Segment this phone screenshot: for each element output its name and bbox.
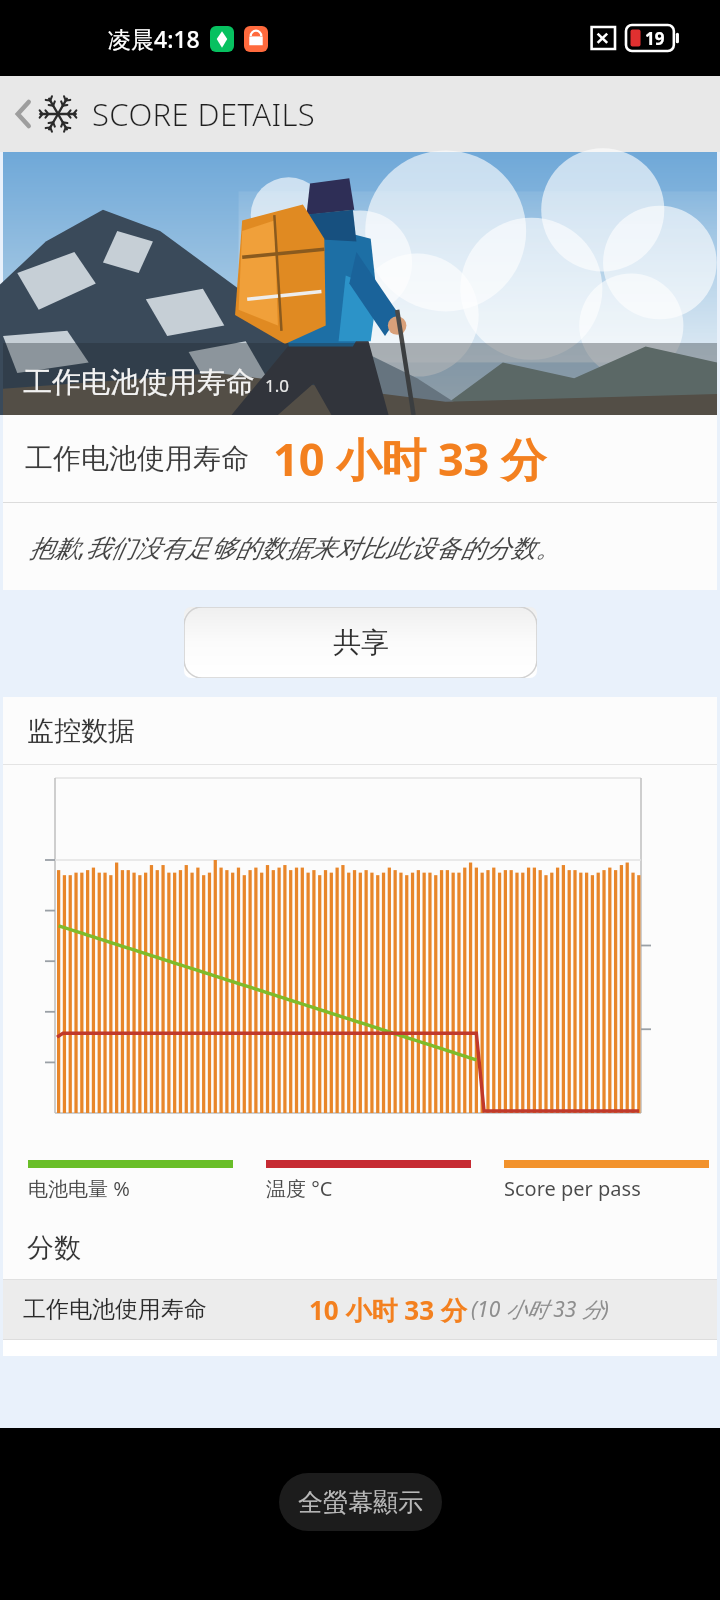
staticText: 工作电池使用寿命 [23,364,255,401]
staticText: 抱歉,我们没有足够的数据来对比此设备的分数。 [29,530,561,564]
staticText: 全螢幕顯示 [298,1487,423,1518]
staticText: 10 小时 33 分 [309,1292,467,1328]
button[interactable]: 工作电池使用寿命 [3,1280,717,1339]
staticText: 工作电池使用寿命 [23,1295,207,1324]
button[interactable]: 工作电池使用寿命 [3,415,717,502]
staticText: (10 小时 33 分) [471,1295,609,1324]
staticText: 温度 °C [266,1175,333,1202]
staticText: 10 小时 33 分 [273,428,547,489]
other: Back [10,94,36,134]
staticText: 工作电池使用寿命 [25,441,249,476]
staticText: 分数 [27,1231,81,1265]
button[interactable]: 工作电池使用寿命 [3,152,717,415]
button[interactable]: 监控数据 [3,697,717,764]
button[interactable]: 抱歉,我们没有足够的数据来对比此设备的分数。 [3,503,717,590]
button[interactable]: 共享 [184,607,537,678]
button[interactable]: Back [0,76,720,152]
staticText: 1.0 [265,374,290,397]
staticText: 19 [645,27,665,50]
button[interactable]: 全螢幕顯示 [279,1473,442,1531]
staticText: 监控数据 [27,714,135,748]
staticText: 凌晨4:18 [108,23,200,54]
staticText: 电池电量 % [28,1175,130,1202]
staticText: Score per pass [504,1175,641,1202]
other: No SIM [585,27,615,49]
staticText: SCORE DETAILS [92,93,316,135]
staticText: 共享 [333,625,389,660]
